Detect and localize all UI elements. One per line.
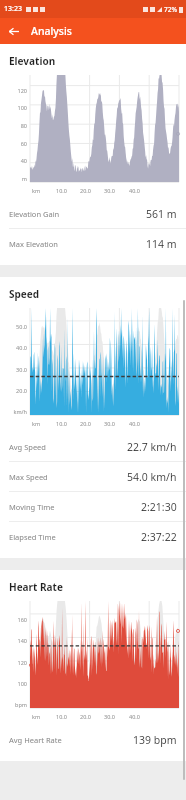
staticText: bpm	[6, 701, 27, 708]
staticText: 30.0	[104, 187, 115, 194]
staticText: 30.0	[104, 713, 115, 720]
button[interactable]: Elapsed Time	[0, 521, 186, 551]
staticText: 22.7 km/h	[127, 440, 177, 454]
staticText: 40.0	[6, 344, 27, 351]
staticText: 10.0	[56, 713, 67, 720]
staticText: 10.0	[56, 187, 67, 194]
staticText: Speed	[9, 287, 40, 301]
staticText: 120	[6, 87, 27, 94]
staticText: Avg Heart Rate	[9, 735, 133, 745]
staticText: m	[6, 175, 27, 182]
staticText: km	[32, 187, 41, 194]
staticText: km	[32, 713, 41, 720]
staticText: Analysis	[31, 24, 72, 38]
button[interactable]: Max Elevation	[0, 228, 186, 258]
staticText: 30.0	[104, 420, 115, 427]
staticText: 40.0	[129, 713, 140, 720]
staticText: Elevation Gain	[9, 209, 146, 219]
staticText: 20.0	[80, 713, 91, 720]
staticText: Avg Speed	[9, 442, 127, 452]
staticText: Max Elevation	[9, 239, 146, 249]
button[interactable]: Avg Heart Rate	[0, 725, 186, 754]
staticText: Heart Rate	[9, 580, 63, 594]
staticText: 20.0	[80, 187, 91, 194]
staticText: Elevation	[9, 54, 56, 68]
staticText: 20.0	[80, 420, 91, 427]
staticText: 10.0	[56, 420, 67, 427]
staticText: 50.0	[6, 323, 27, 330]
staticText: 140	[6, 637, 27, 644]
staticText: 60	[6, 140, 27, 147]
staticText: 114 m	[146, 237, 177, 251]
staticText: 20.0	[6, 387, 27, 394]
staticText: 100	[6, 680, 27, 687]
staticText: km/h	[6, 408, 27, 415]
staticText: Moving Time	[9, 502, 141, 512]
staticText: 2:21:30	[141, 500, 177, 514]
staticText: 40	[6, 157, 27, 164]
staticText: 2:37:22	[141, 530, 177, 544]
staticText: 120	[6, 659, 27, 666]
staticText: km	[32, 420, 41, 427]
staticText: 40.0	[129, 420, 140, 427]
staticText: Elapsed Time	[9, 532, 141, 542]
staticText: 40.0	[129, 187, 140, 194]
staticText: Max Speed	[9, 472, 127, 482]
button[interactable]: Elevation Gain	[0, 199, 186, 228]
button[interactable]: Avg Speed	[0, 432, 186, 461]
button[interactable]: Back	[3, 21, 23, 41]
staticText: 80	[6, 122, 27, 129]
button[interactable]: Moving Time	[0, 491, 186, 521]
staticText: 72%	[164, 5, 177, 14]
staticText: 30.0	[6, 366, 27, 373]
staticText: 54.0 km/h	[127, 470, 177, 484]
staticText: 139 bpm	[133, 733, 177, 747]
staticText: 160	[6, 616, 27, 623]
staticText: 561 m	[146, 207, 177, 221]
staticText: 13:23	[4, 4, 22, 14]
button[interactable]: Max Speed	[0, 461, 186, 491]
staticText: 100	[6, 104, 27, 111]
